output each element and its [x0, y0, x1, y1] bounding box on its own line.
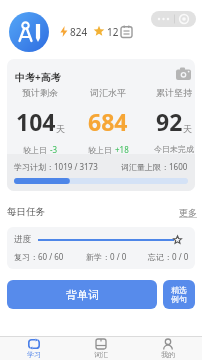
staticText: 精选 例句	[171, 285, 187, 305]
button[interactable]: 精选 例句	[163, 280, 195, 309]
staticText: 中考+高考	[15, 70, 61, 84]
staticText: 词汇水平	[90, 87, 126, 98]
staticText: 104	[16, 106, 56, 137]
staticText: 92	[156, 106, 183, 137]
button[interactable]: 学习	[0, 338, 67, 360]
staticText: 忘记：0 / 0	[148, 251, 189, 262]
button[interactable]: 我的	[134, 338, 201, 360]
button[interactable]: 更多	[179, 207, 197, 218]
staticText: 背单词	[66, 288, 99, 302]
staticText: 预计剩余	[22, 87, 58, 98]
staticText: 新学：0 / 0	[86, 251, 127, 262]
staticText: 较上日	[88, 144, 115, 155]
staticText: 学习计划：1019 / 3173	[14, 161, 98, 172]
staticText: +18	[115, 144, 129, 155]
staticText: 天	[56, 123, 65, 134]
button[interactable]	[9, 12, 49, 52]
staticText: 复习：60 / 60	[14, 251, 64, 262]
staticText: 词汇	[94, 350, 108, 359]
staticText: 累计坚持	[156, 87, 192, 98]
staticText: -3	[50, 144, 58, 155]
staticText: 学习	[27, 350, 41, 359]
staticText: 词汇量上限：1600	[121, 161, 188, 172]
button[interactable]	[151, 11, 196, 27]
staticText: 较上日	[23, 144, 50, 155]
button[interactable]: 词汇	[67, 338, 134, 360]
staticText: 12	[107, 25, 119, 39]
staticText: 进度	[14, 234, 31, 245]
staticText: 今日未完成	[154, 144, 194, 154]
staticText: 824	[70, 25, 88, 39]
staticText: 天	[183, 123, 192, 134]
button[interactable]: 背单词	[7, 280, 157, 309]
staticText: 每日任务	[7, 206, 45, 218]
staticText: 我的	[161, 350, 175, 359]
staticText: 684	[88, 106, 128, 137]
